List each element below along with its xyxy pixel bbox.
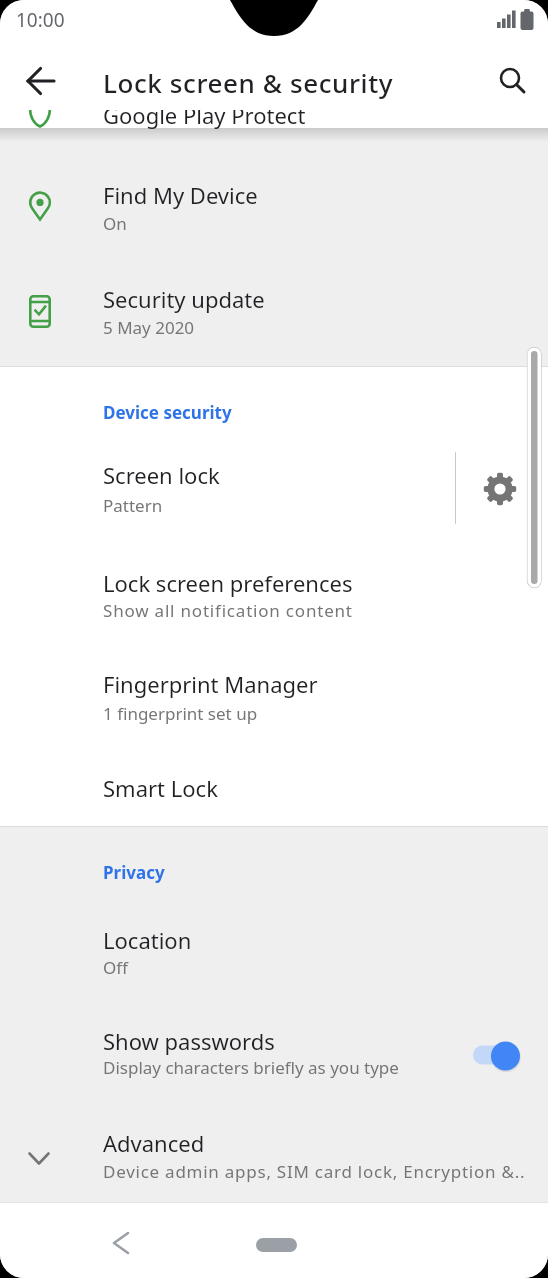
button[interactable]: Find My Device bbox=[0, 168, 548, 250]
staticText: 1 fingerprint set up bbox=[103, 702, 258, 725]
staticText: Lock screen preferences bbox=[103, 568, 353, 598]
staticText: Smart Lock bbox=[103, 773, 218, 803]
staticText: Show passwords bbox=[103, 1026, 275, 1056]
button[interactable]: Location bbox=[0, 912, 548, 992]
staticText: Security update bbox=[103, 284, 265, 314]
staticText: Google Play Protect bbox=[103, 100, 306, 130]
staticText: Display characters briefly as you type bbox=[103, 1056, 399, 1079]
button[interactable]: Screen lock bbox=[0, 448, 448, 532]
button[interactable]: Show passwords bbox=[0, 1014, 548, 1096]
staticText: Device admin apps, SIM card lock, Encryp… bbox=[103, 1160, 526, 1183]
staticText: On bbox=[103, 212, 127, 235]
button[interactable]: Fingerprint Manager bbox=[0, 658, 548, 740]
button[interactable] bbox=[256, 1238, 297, 1252]
button[interactable]: Advanced bbox=[0, 1120, 548, 1198]
staticText: Lock screen & security bbox=[103, 65, 394, 100]
staticText: 10:00 bbox=[16, 7, 65, 33]
staticText: Location bbox=[103, 925, 192, 955]
button[interactable]: Smart Lock bbox=[0, 762, 548, 818]
button[interactable]: Security update bbox=[0, 272, 548, 354]
staticText: Device security bbox=[103, 401, 232, 424]
staticText: Off bbox=[103, 956, 128, 979]
staticText: Find My Device bbox=[103, 180, 258, 210]
staticText: Fingerprint Manager bbox=[103, 669, 318, 699]
staticText: Privacy bbox=[103, 861, 165, 884]
button[interactable] bbox=[18, 59, 62, 103]
staticText: Advanced bbox=[103, 1128, 205, 1158]
staticText: Screen lock bbox=[103, 460, 220, 490]
button[interactable] bbox=[472, 461, 528, 517]
staticText: Show all notification content bbox=[103, 599, 353, 622]
button[interactable] bbox=[490, 59, 534, 103]
staticText: Pattern bbox=[103, 494, 163, 517]
button[interactable] bbox=[98, 1221, 142, 1265]
staticText: 5 May 2020 bbox=[103, 316, 195, 339]
button[interactable]: Lock screen preferences bbox=[0, 556, 548, 636]
